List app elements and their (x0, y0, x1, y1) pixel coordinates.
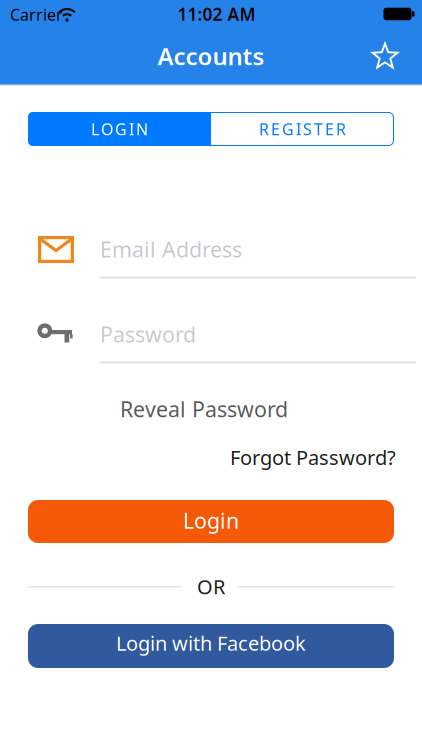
staticText: L O G I N (91, 118, 148, 140)
button[interactable]: Favorite (370, 41, 400, 71)
staticText: Login (183, 506, 239, 535)
staticText: Reveal Password (120, 395, 288, 423)
staticText: Password (100, 320, 196, 348)
staticText: Forgot Password? (230, 444, 396, 471)
staticText: OR (197, 573, 225, 600)
button[interactable]: Forgot Password? (230, 444, 396, 471)
button[interactable]: Login with Facebook (28, 624, 394, 668)
staticText: Login with Facebook (116, 630, 306, 656)
button[interactable]: L O G I N (28, 112, 211, 146)
staticText: R E G I S T E R (259, 118, 346, 140)
button[interactable]: Login (28, 500, 394, 543)
staticText: Email Address (100, 235, 242, 263)
button[interactable]: R E G I S T E R (211, 112, 394, 146)
staticText: 11:02 AM (177, 2, 255, 25)
staticText: Accounts (157, 40, 264, 72)
button[interactable]: Reveal Password (120, 395, 288, 423)
staticText: Carrier (10, 4, 63, 25)
